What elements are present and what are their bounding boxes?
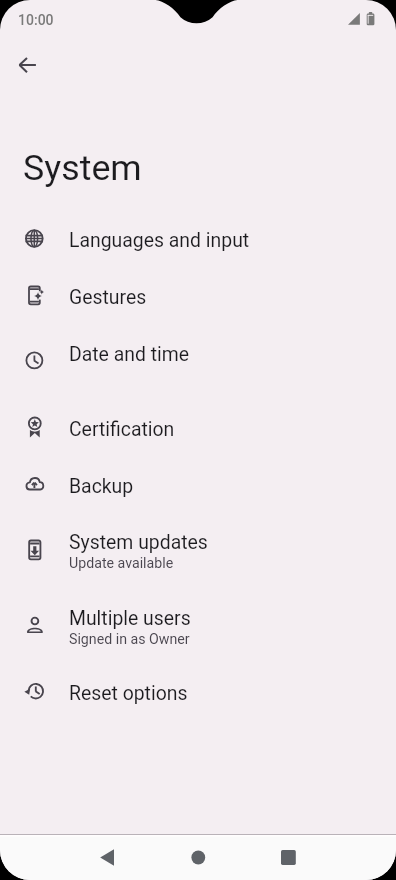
staticText: Date and time xyxy=(69,343,190,366)
button[interactable]: Certification xyxy=(0,407,396,463)
staticText: 10:00 xyxy=(18,12,54,29)
staticText: Certification xyxy=(69,418,175,441)
staticText: Signed in as Owner xyxy=(69,631,190,648)
button[interactable]: Gestures xyxy=(0,275,396,331)
button[interactable]: Backup xyxy=(0,464,396,520)
button[interactable]: System updates xyxy=(0,526,396,602)
button[interactable]: Date and time xyxy=(0,332,396,388)
button[interactable]: Reset options xyxy=(0,671,396,727)
button[interactable]: Multiple users xyxy=(0,602,396,678)
button[interactable]: Languages and input xyxy=(0,218,396,274)
staticText: System xyxy=(23,146,142,189)
staticText: System updates xyxy=(69,531,208,554)
staticText: Reset options xyxy=(69,682,188,705)
staticText: Update available xyxy=(69,555,174,572)
staticText: Backup xyxy=(69,475,134,498)
staticText: Languages and input xyxy=(69,229,250,252)
staticText: Gestures xyxy=(69,286,147,309)
button[interactable]: Back xyxy=(6,44,50,88)
staticText: Multiple users xyxy=(69,607,191,630)
